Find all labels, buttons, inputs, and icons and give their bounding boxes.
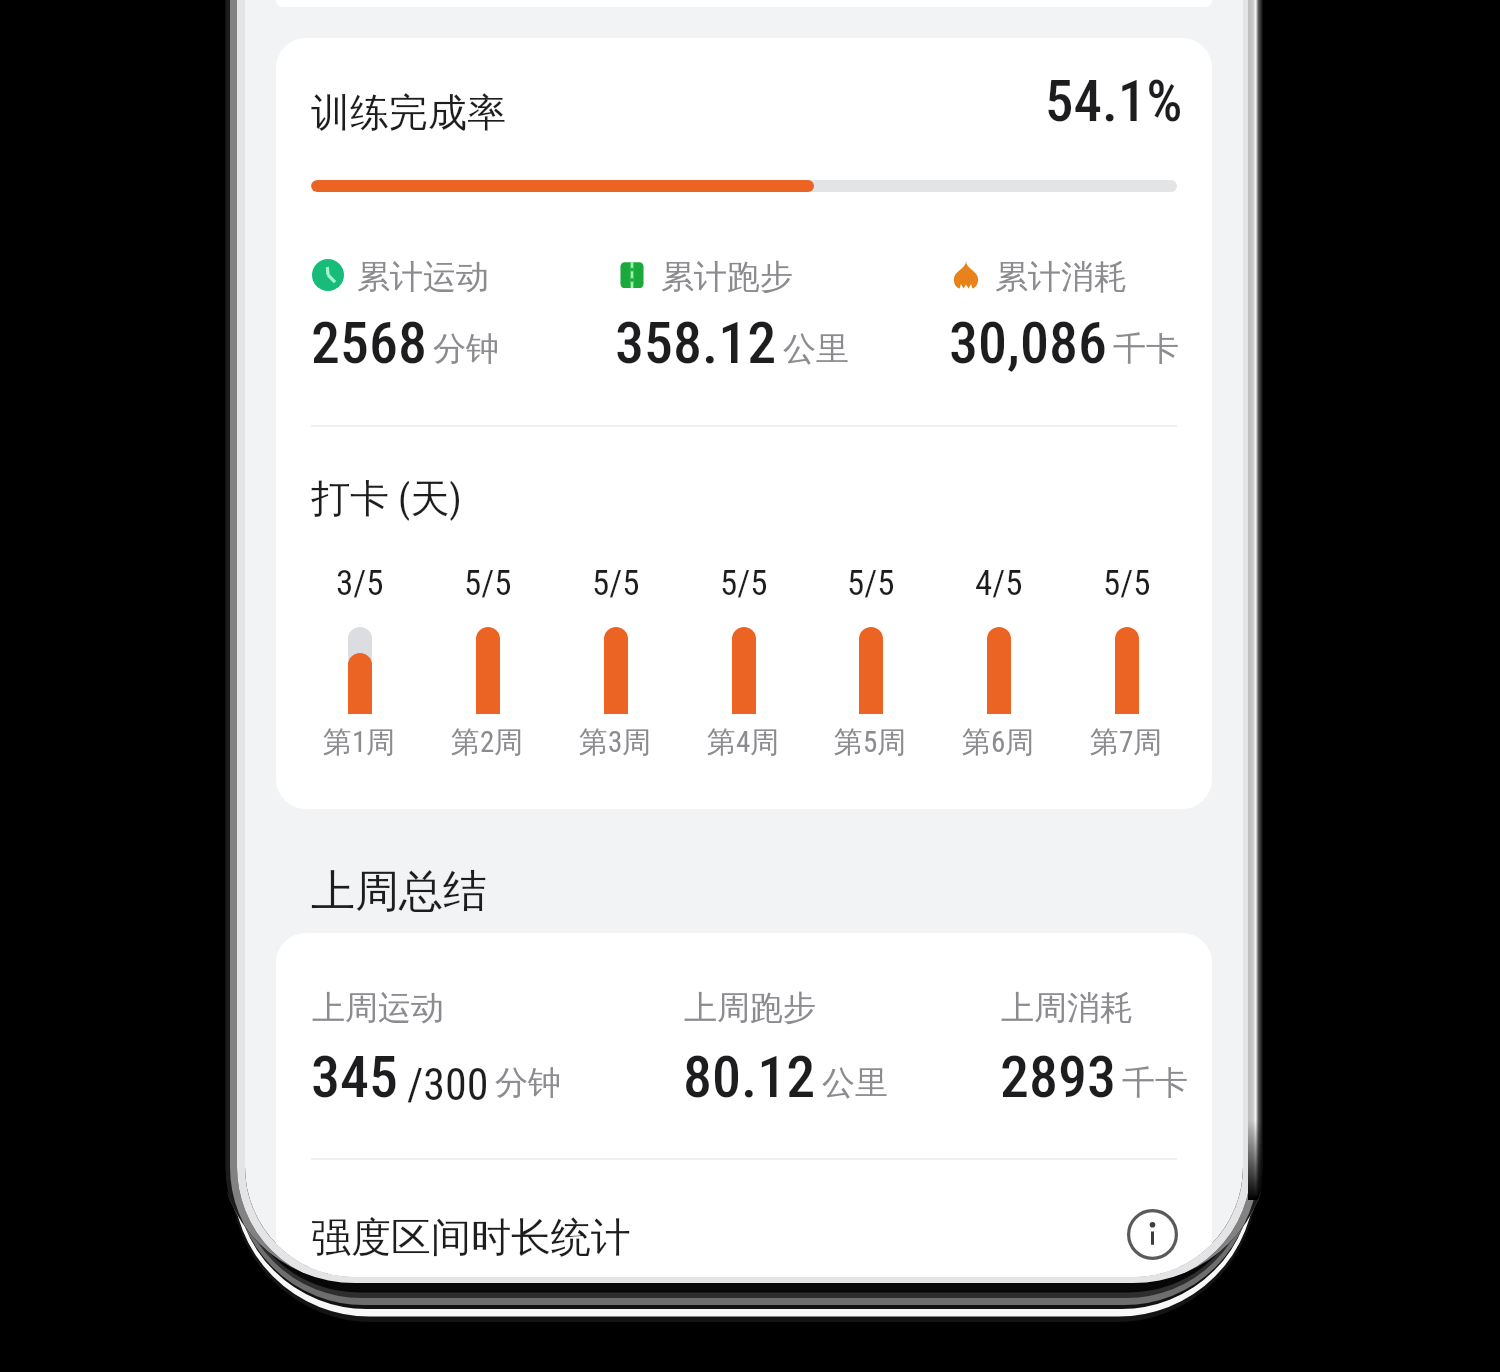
- staticText: 累计运动: [357, 256, 489, 298]
- staticText: 4/5: [975, 563, 1023, 604]
- staticText: 上周消耗: [1001, 987, 1133, 1029]
- staticText: 第5周: [834, 724, 907, 761]
- staticText: 第2周: [451, 724, 524, 761]
- staticText: 分钟: [495, 1062, 561, 1104]
- staticText: 打卡 (天): [311, 474, 462, 523]
- staticText: 上周跑步: [684, 987, 816, 1029]
- staticText: 358.12: [615, 309, 777, 377]
- staticText: 千卡: [1113, 328, 1179, 370]
- button[interactable]: 上周总结: [276, 933, 1212, 1277]
- staticText: /300: [407, 1059, 489, 1111]
- staticText: 2893: [1000, 1043, 1116, 1111]
- staticText: 5/5: [592, 563, 640, 604]
- staticText: 训练完成率: [311, 88, 506, 137]
- button[interactable]: 训练完成率 54.1%: [276, 38, 1212, 809]
- staticText: 30,086: [949, 309, 1107, 377]
- button[interactable]: 强度区间时长统计: [276, 1180, 1212, 1277]
- button[interactable]: Info: [1127, 1209, 1178, 1260]
- staticText: 上周运动: [312, 987, 444, 1029]
- staticText: 80.12: [683, 1043, 816, 1111]
- staticText: 第6周: [962, 724, 1035, 761]
- staticText: 公里: [783, 328, 849, 370]
- staticText: 第3周: [579, 724, 652, 761]
- staticText: 千卡: [1122, 1062, 1188, 1104]
- staticText: 2568: [311, 309, 427, 377]
- staticText: 上周总结: [311, 864, 487, 919]
- staticText: 54.1%: [1045, 68, 1183, 135]
- staticText: 345: [311, 1043, 398, 1111]
- staticText: 分钟: [433, 328, 499, 370]
- staticText: 5/5: [464, 563, 512, 604]
- staticText: 3/5: [336, 563, 384, 604]
- staticText: 第1周: [323, 724, 396, 761]
- staticText: 第4周: [707, 724, 780, 761]
- staticText: 5/5: [847, 563, 895, 604]
- staticText: 累计消耗: [995, 256, 1127, 298]
- staticText: 第7周: [1090, 724, 1163, 761]
- staticText: 公里: [822, 1062, 888, 1104]
- staticText: 强度区间时长统计: [311, 1212, 631, 1262]
- staticText: 5/5: [720, 563, 768, 604]
- staticText: 累计跑步: [661, 256, 793, 298]
- staticText: 5/5: [1103, 563, 1151, 604]
